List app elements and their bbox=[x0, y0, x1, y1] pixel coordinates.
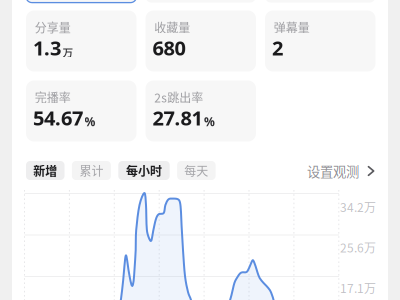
staticText: 25.6万 bbox=[340, 238, 376, 256]
staticText: 分享量 bbox=[35, 18, 71, 36]
staticText: 17.1万 bbox=[340, 279, 376, 296]
button[interactable]: 累计 bbox=[72, 161, 111, 180]
staticText: 收藏量 bbox=[154, 18, 190, 36]
staticText: 2 bbox=[272, 34, 283, 61]
staticText: 累计 bbox=[79, 162, 103, 179]
button[interactable]: 新增 bbox=[26, 161, 64, 180]
button[interactable]: 2s跳出率 bbox=[145, 80, 256, 141]
staticText: 27.81 bbox=[152, 104, 202, 131]
staticText: % bbox=[204, 114, 215, 129]
staticText: 完播率 bbox=[35, 88, 71, 106]
staticText: 2s跳出率 bbox=[154, 88, 203, 106]
button[interactable]: 每天 bbox=[177, 161, 216, 180]
staticText: 每小时 bbox=[126, 162, 162, 179]
button[interactable]: 设置观测 bbox=[307, 161, 374, 181]
button[interactable]: 分享量 bbox=[26, 10, 136, 71]
button[interactable]: 收藏量 bbox=[145, 10, 256, 71]
staticText: 34.2万 bbox=[340, 198, 376, 215]
staticText: 设置观测 bbox=[307, 161, 359, 181]
button[interactable]: 弹幕量 bbox=[265, 10, 375, 71]
staticText: 1.3 bbox=[33, 34, 61, 61]
staticText: 680 bbox=[152, 34, 185, 61]
staticText: 每天 bbox=[184, 162, 208, 179]
button[interactable]: 完播率 bbox=[26, 80, 136, 141]
staticText: 万 bbox=[62, 44, 73, 59]
button[interactable]: 每小时 bbox=[118, 161, 170, 180]
staticText: % bbox=[84, 114, 95, 129]
staticText: 弹幕量 bbox=[274, 18, 310, 36]
staticText: 新增 bbox=[33, 162, 57, 179]
staticText: 54.67 bbox=[33, 104, 83, 131]
